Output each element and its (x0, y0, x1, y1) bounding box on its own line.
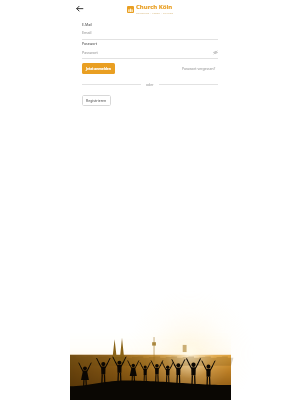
button[interactable]: Back (73, 2, 86, 15)
button[interactable]: Jetzt anmelden (82, 63, 115, 74)
staticText: Passwort (82, 41, 98, 46)
staticText: Church Köln (136, 3, 173, 11)
staticText: Passwort (82, 50, 98, 55)
button[interactable]: Passwort vergessen? (182, 66, 218, 71)
staticText: Email (82, 30, 92, 35)
button[interactable]: Registrieren (82, 95, 111, 106)
staticText: Passwort vergessen? (182, 66, 216, 71)
staticText: GEMEINDE · LEBEN · GLAUBE (136, 12, 174, 15)
staticText: oder (146, 82, 154, 87)
staticText: E-Mail (82, 22, 93, 27)
staticText: Jetzt anmelden (86, 66, 111, 71)
staticText: Registrieren (86, 98, 107, 103)
button[interactable]: Show password (212, 49, 218, 55)
